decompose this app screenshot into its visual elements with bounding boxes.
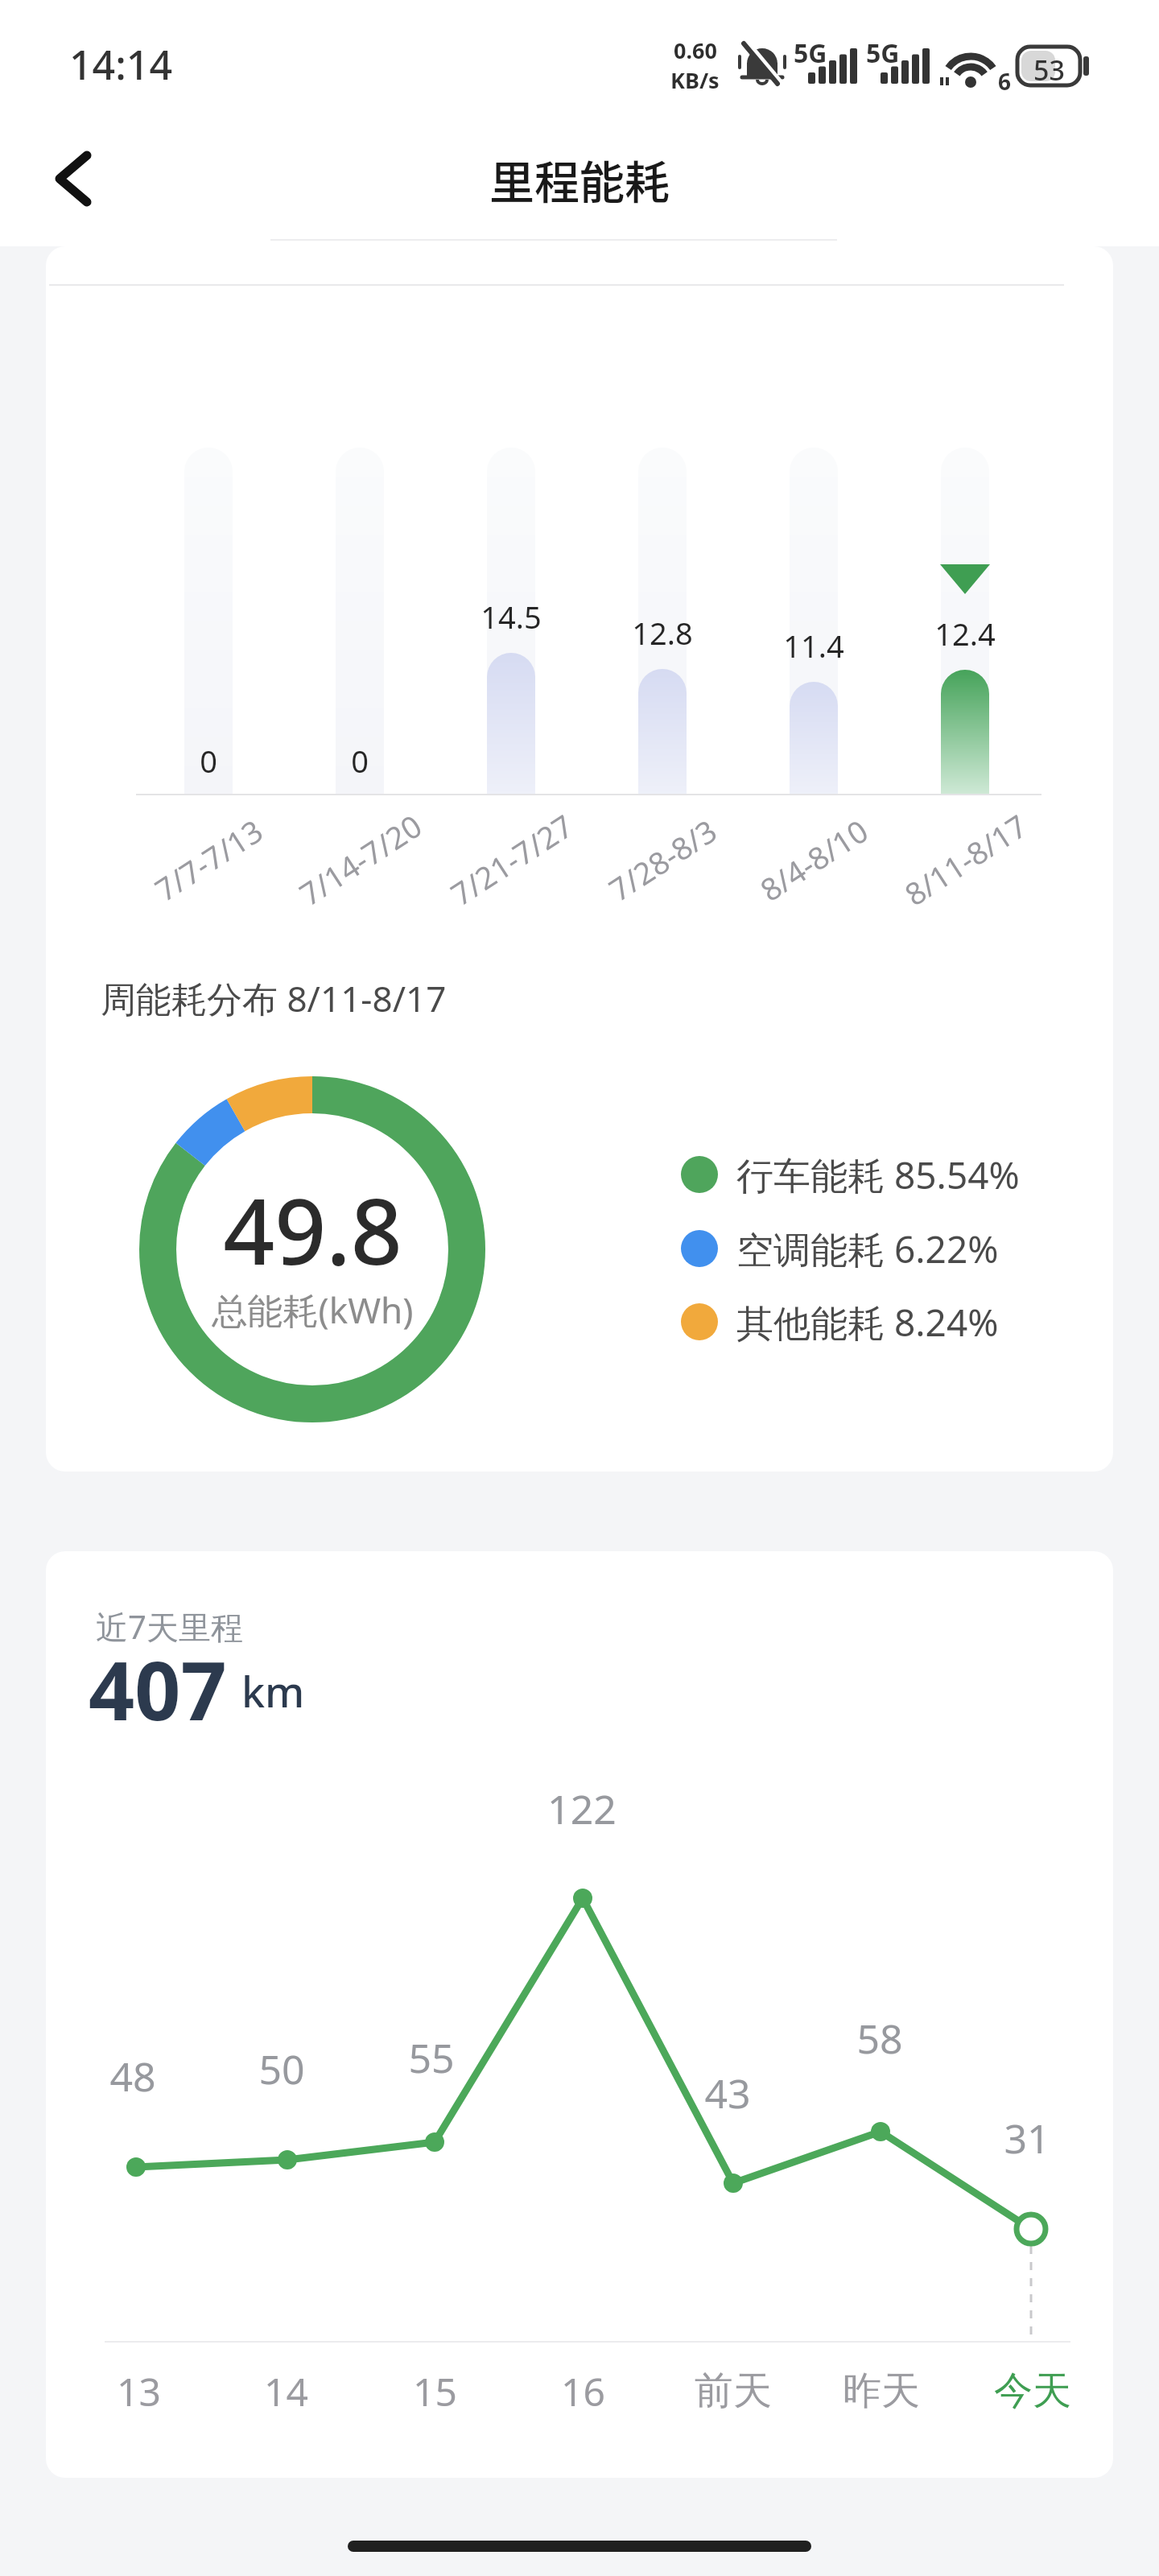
staticText: 16 (561, 2365, 605, 2417)
staticText: 里程能耗 (489, 147, 670, 212)
staticText: 行车能耗 85.54% (736, 1150, 1020, 1200)
staticText: 8/11-8/17 (896, 805, 1034, 915)
staticText: 122 (547, 1781, 617, 1836)
staticText: 43 (704, 2066, 751, 2120)
staticText: 7/7-7/13 (146, 809, 270, 910)
staticText: 5G (866, 35, 900, 71)
staticText: km (241, 1662, 305, 1719)
staticText: 55 (408, 2030, 455, 2085)
staticText: 今天 (994, 2367, 1071, 2415)
staticText: 31 (1004, 2111, 1050, 2165)
staticText: 15 (413, 2365, 457, 2417)
staticText: KB/s (670, 65, 720, 92)
staticText: 近7天里程 (96, 1604, 243, 1649)
staticText: 14:14 (69, 37, 172, 92)
staticText: 5G (794, 35, 827, 71)
staticText: 7/21-7/27 (442, 805, 581, 915)
staticText: 49.8 (223, 1168, 402, 1291)
staticText: 其他能耗 8.24% (736, 1297, 999, 1348)
staticText: 13 (117, 2365, 161, 2417)
staticText: 总能耗(kWh) (212, 1286, 414, 1334)
staticText: 6 (998, 66, 1012, 97)
staticText: 0.60 (674, 35, 717, 65)
staticText: 12.8 (632, 612, 693, 654)
staticText: 0 (200, 740, 217, 782)
staticText: 407 (89, 1634, 227, 1729)
staticText: 昨天 (843, 2367, 920, 2415)
staticText: 7/14-7/20 (291, 805, 429, 915)
staticText: 空调能耗 6.22% (736, 1224, 999, 1274)
staticText: 50 (258, 2041, 305, 2096)
staticText: 0 (351, 740, 369, 782)
staticText: 周能耗分布 8/11-8/17 (101, 974, 447, 1022)
staticText: 48 (109, 2049, 156, 2103)
staticText: 58 (856, 2011, 903, 2066)
staticText: 11.4 (783, 625, 844, 667)
staticText: 53 (1033, 52, 1065, 89)
staticText: 12.4 (934, 613, 996, 654)
staticText: 前天 (695, 2367, 772, 2415)
staticText: 14.5 (481, 596, 542, 638)
button[interactable] (41, 138, 122, 218)
staticText: 8/4-8/10 (752, 809, 876, 910)
staticText: 7/28-8/3 (600, 809, 724, 910)
staticText: 14 (264, 2365, 308, 2417)
